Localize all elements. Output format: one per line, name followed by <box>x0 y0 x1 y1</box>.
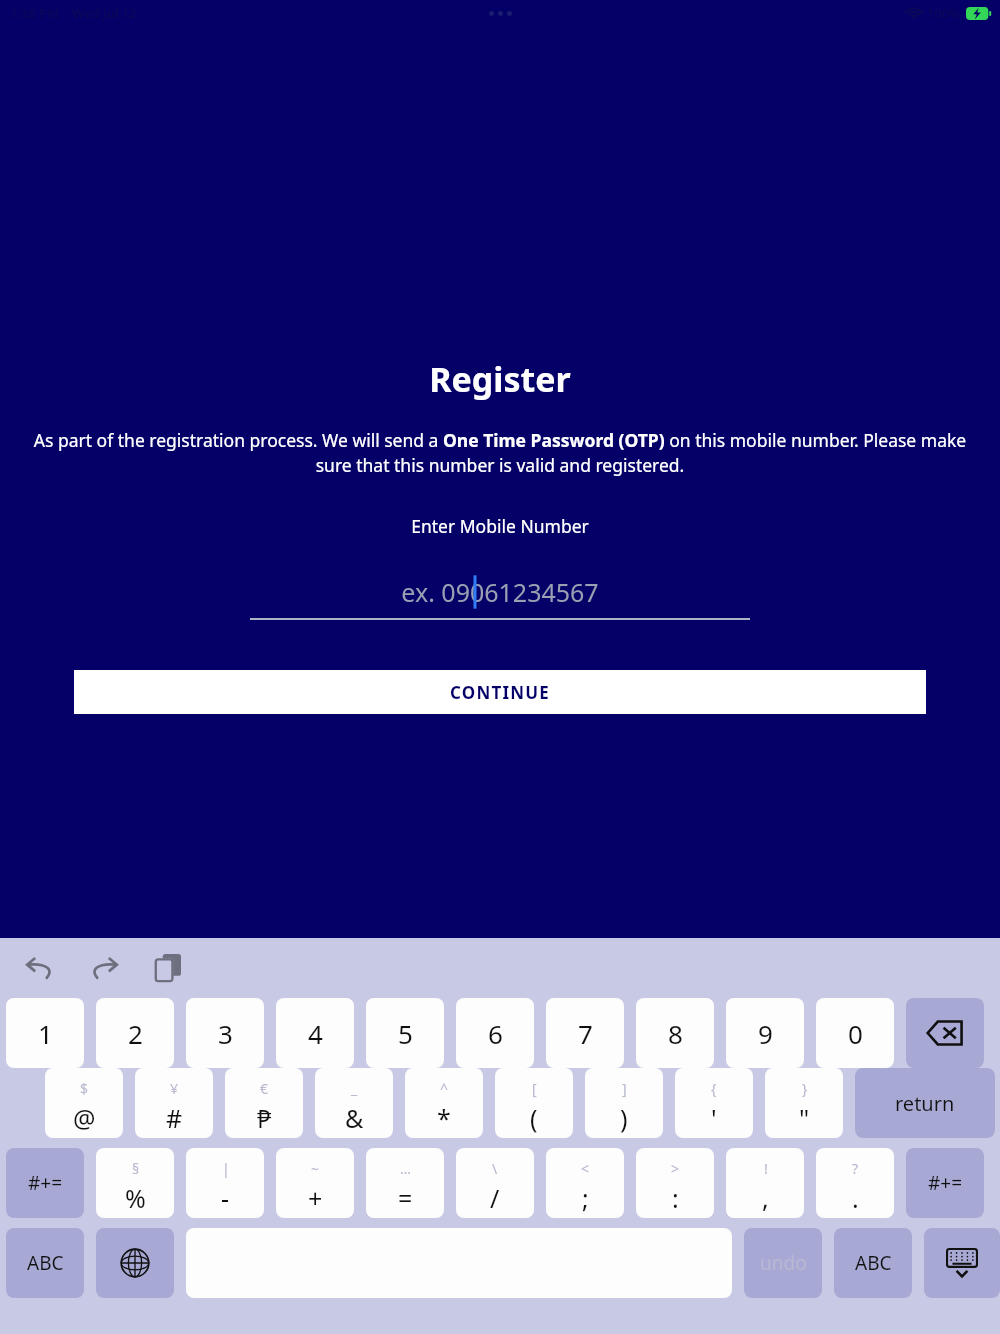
staticText: € <box>260 1079 269 1098</box>
button[interactable]: ^ <box>405 1068 483 1138</box>
staticText: , <box>762 1181 769 1215</box>
button[interactable]: Hide keyboard <box>924 1228 1000 1298</box>
staticText: … <box>400 1159 412 1178</box>
button[interactable]: < <box>546 1148 624 1218</box>
staticText: 3 <box>218 1016 233 1051</box>
button[interactable]: 8 <box>636 998 714 1068</box>
staticText: § <box>132 1159 140 1178</box>
button[interactable]: 6 <box>456 998 534 1068</box>
button[interactable]: 7 <box>546 998 624 1068</box>
staticText: As part of the registration process. We … <box>22 428 978 478</box>
button[interactable]: { <box>675 1068 753 1138</box>
button[interactable]: 1 <box>6 998 84 1068</box>
staticText: 4 <box>308 1016 323 1051</box>
button[interactable]: \ <box>456 1148 534 1218</box>
button[interactable]: ¥ <box>135 1068 213 1138</box>
staticText: % <box>125 1181 146 1215</box>
staticText: 9 <box>758 1016 773 1051</box>
button[interactable]: 9 <box>726 998 804 1068</box>
button[interactable]: ? <box>816 1148 894 1218</box>
staticText: 7 <box>578 1016 593 1051</box>
button[interactable]: > <box>636 1148 714 1218</box>
staticText: [ <box>532 1079 537 1098</box>
staticText: < <box>581 1159 590 1178</box>
staticText: 5 <box>398 1016 413 1051</box>
button[interactable]: ABC <box>834 1228 912 1298</box>
staticText: . <box>852 1181 859 1215</box>
button[interactable]: € <box>225 1068 303 1138</box>
button[interactable]: Change keyboard <box>96 1228 174 1298</box>
staticText: ^ <box>440 1079 449 1098</box>
button[interactable]: [ <box>495 1068 573 1138</box>
button[interactable]: Paste <box>150 950 186 986</box>
staticText: ] <box>622 1079 627 1098</box>
button[interactable]: Undo <box>22 950 58 986</box>
button[interactable]: CONTINUE <box>74 670 926 714</box>
staticText: } <box>802 1079 808 1098</box>
button[interactable]: } <box>765 1068 843 1138</box>
staticText: 100% <box>927 4 961 22</box>
button[interactable]: Backspace <box>906 998 984 1068</box>
staticText: 8 <box>668 1016 683 1051</box>
button[interactable]: … <box>366 1148 444 1218</box>
button[interactable]: $ <box>45 1068 123 1138</box>
button[interactable]: ABC <box>6 1228 84 1298</box>
staticText: \ <box>492 1159 498 1178</box>
staticText: 1:38 PM <box>10 4 60 22</box>
staticText: / <box>490 1181 500 1215</box>
staticText: @ <box>73 1101 96 1135</box>
staticText: ; <box>582 1181 589 1215</box>
staticText: 6 <box>488 1016 503 1051</box>
staticText: = <box>398 1181 413 1215</box>
staticText: + <box>308 1181 323 1215</box>
staticText: ( <box>530 1101 538 1135</box>
button[interactable]: return <box>855 1068 995 1138</box>
button[interactable]: 4 <box>276 998 354 1068</box>
staticText: ABC <box>27 1250 64 1276</box>
staticText: Register <box>0 356 1000 402</box>
staticText: : <box>672 1181 679 1215</box>
staticText: > <box>671 1159 680 1178</box>
staticText: ex. 09061234567 <box>401 575 599 609</box>
staticText: return <box>895 1090 955 1117</box>
staticText: CONTINUE <box>450 681 551 704</box>
staticText: " <box>799 1101 810 1135</box>
button[interactable]: undo <box>744 1228 822 1298</box>
staticText: ' <box>711 1101 717 1135</box>
staticText: ) <box>620 1101 628 1135</box>
button[interactable]: Redo <box>86 950 122 986</box>
staticText: ₱ <box>257 1101 272 1135</box>
button[interactable]: 0 <box>816 998 894 1068</box>
staticText: ABC <box>855 1250 892 1276</box>
staticText: & <box>345 1101 364 1135</box>
button[interactable]: ~ <box>276 1148 354 1218</box>
staticText: $ <box>80 1079 89 1098</box>
button[interactable]: ! <box>726 1148 804 1218</box>
staticText: ? <box>852 1159 859 1178</box>
staticText: 0 <box>848 1016 863 1051</box>
staticText: 1 <box>38 1016 53 1051</box>
button[interactable]: 2 <box>96 998 174 1068</box>
staticText: # <box>166 1101 183 1135</box>
button[interactable]: #+= <box>906 1148 984 1218</box>
staticText: #+= <box>28 1170 63 1196</box>
button[interactable]: § <box>96 1148 174 1218</box>
button[interactable]: | <box>186 1148 264 1218</box>
button[interactable]: 3 <box>186 998 264 1068</box>
staticText: * <box>437 1101 451 1135</box>
staticText: Enter Mobile Number <box>0 514 1000 538</box>
button[interactable]: 5 <box>366 998 444 1068</box>
staticText: - <box>221 1181 230 1215</box>
staticText: ~ <box>311 1159 320 1178</box>
staticText: ! <box>764 1159 768 1178</box>
staticText: undo <box>760 1250 807 1276</box>
button[interactable]: _ <box>315 1068 393 1138</box>
staticText: Wed Jul 12 <box>72 4 137 22</box>
button[interactable]: #+= <box>6 1148 84 1218</box>
button[interactable]: ex. 09061234567 <box>250 566 750 618</box>
button[interactable]: ] <box>585 1068 663 1138</box>
staticText: #+= <box>928 1170 963 1196</box>
staticText: | <box>222 1159 230 1178</box>
staticText: 2 <box>128 1016 143 1051</box>
